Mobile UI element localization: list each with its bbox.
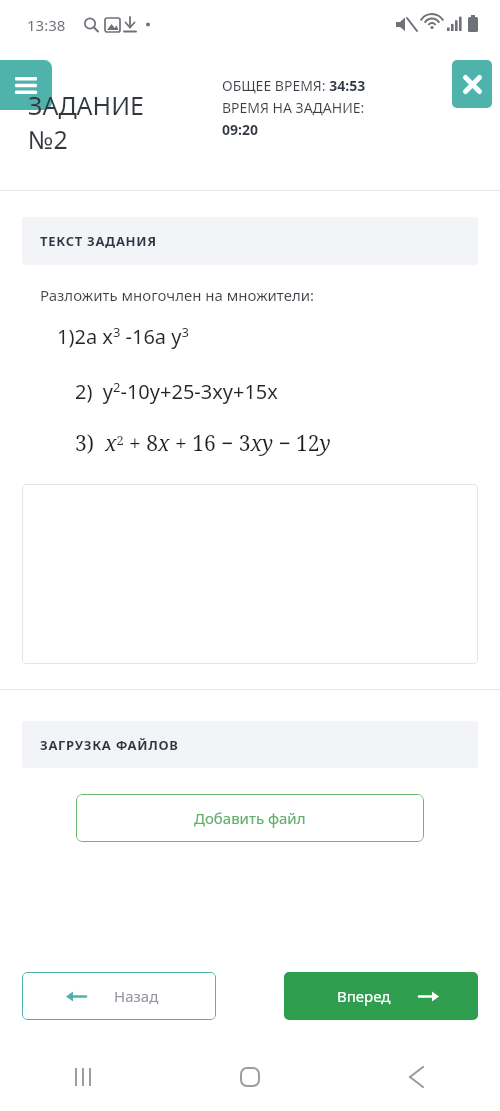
staticText: 1)2a x3 -16a y3 xyxy=(57,323,189,350)
button[interactable]: ТЕКСТ ЗАДАНИЯ xyxy=(22,217,478,265)
staticText: Вперед xyxy=(337,986,391,1006)
button[interactable]: Вперед xyxy=(284,972,478,1020)
button[interactable]: Назад xyxy=(22,972,216,1020)
button[interactable]: Поле для ответа xyxy=(22,484,478,664)
button[interactable]: Home xyxy=(166,1043,333,1111)
button[interactable]: Закрыть xyxy=(452,60,492,108)
staticText: №2 xyxy=(28,122,68,156)
staticText: 2) y2-10y+25-3xy+15x xyxy=(75,378,278,405)
staticText: 13:38 xyxy=(27,15,66,35)
staticText: ЗАДАНИЕ xyxy=(28,88,144,122)
staticText: Разложить многочлен на множители: xyxy=(40,285,315,305)
staticText: 09:20 xyxy=(222,120,258,139)
button[interactable]: ЗАГРУЗКА ФАЙЛОВ xyxy=(22,721,478,768)
staticText: 3) x2 + 8x + 16 − 3xy − 12y xyxy=(75,429,331,458)
staticText: ТЕКСТ ЗАДАНИЯ xyxy=(40,232,157,250)
button[interactable]: Меню xyxy=(0,60,52,110)
staticText: ЗАГРУЗКА ФАЙЛОВ xyxy=(40,736,179,754)
button[interactable]: Recents xyxy=(0,1043,166,1111)
button[interactable]: Добавить файл xyxy=(76,794,424,842)
staticText: Назад xyxy=(114,986,159,1006)
staticText: Добавить файл xyxy=(194,808,306,828)
staticText: ВРЕМЯ НА ЗАДАНИЕ: xyxy=(222,98,365,117)
staticText: ОБЩЕЕ ВРЕМЯ: 34:53 xyxy=(222,76,366,95)
button[interactable]: Back xyxy=(333,1043,500,1111)
